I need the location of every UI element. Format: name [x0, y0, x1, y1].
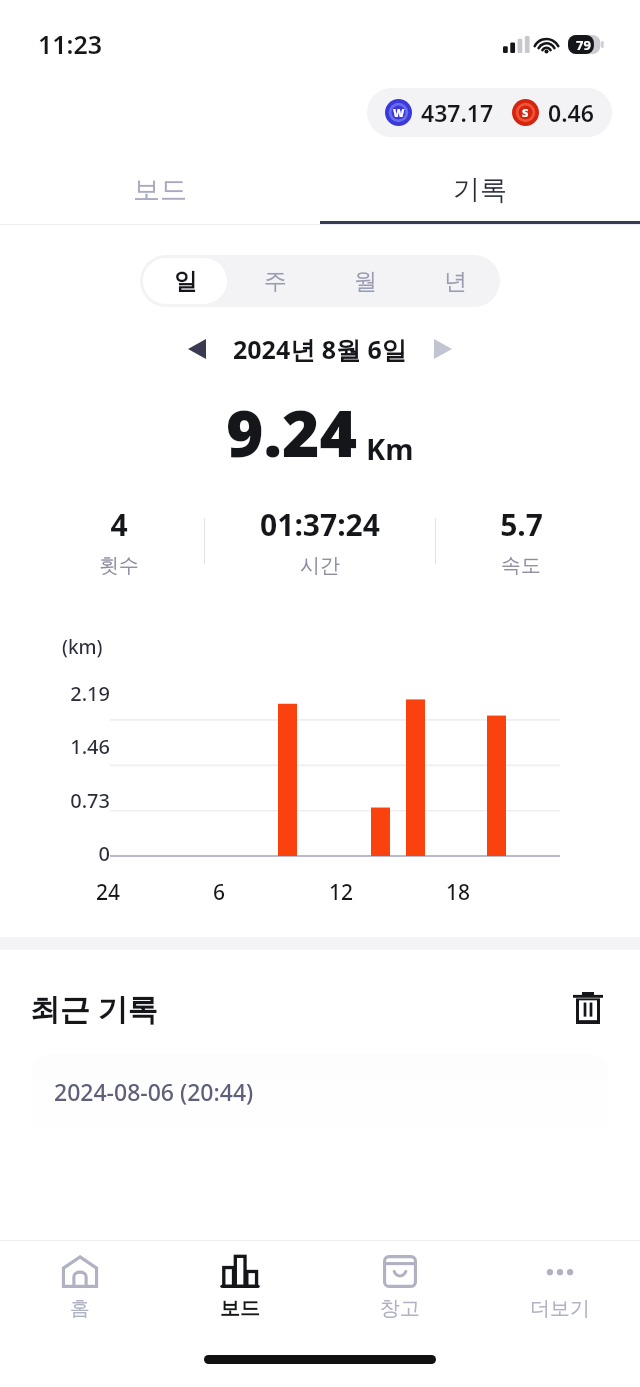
button[interactable]: 4	[34, 504, 204, 578]
staticText: 01:37:24	[260, 504, 380, 545]
staticText: 437.17	[421, 97, 494, 128]
staticText: 최근 기록	[30, 988, 158, 1029]
staticText: 79	[576, 36, 591, 54]
staticText: 보드	[133, 173, 187, 207]
staticText: W	[393, 105, 405, 120]
staticText: 주	[264, 267, 287, 296]
button[interactable]: 이전	[175, 327, 219, 371]
staticText: (km)	[62, 634, 103, 660]
button[interactable]: 5.7	[436, 504, 606, 578]
staticText: 5.7	[500, 504, 543, 545]
button[interactable]: 월	[323, 258, 407, 304]
staticText: 0.73	[48, 787, 110, 814]
button[interactable]: 홈	[0, 1241, 160, 1341]
staticText: Km	[366, 429, 414, 468]
button[interactable]: 2024-08-06 (20:44)	[32, 1054, 608, 1150]
staticText: 월	[354, 267, 377, 296]
button[interactable]: 창고	[320, 1241, 480, 1341]
staticText: 보드	[220, 1296, 260, 1321]
staticText: 기록	[453, 173, 507, 207]
button[interactable]: 01:37:24	[205, 504, 435, 578]
button[interactable]: W	[367, 88, 612, 137]
staticText: 2024년 8월 6일	[233, 332, 407, 366]
staticText: 4	[110, 504, 128, 545]
button[interactable]: 다음	[421, 327, 465, 371]
button[interactable]: 보드	[0, 159, 320, 221]
staticText: 0	[48, 840, 110, 867]
button[interactable]: 삭제	[564, 984, 612, 1032]
staticText: 일	[174, 267, 197, 296]
staticText: 년	[444, 267, 467, 296]
button[interactable]: 더보기	[480, 1241, 640, 1341]
staticText: 24	[96, 878, 121, 907]
button[interactable]: 기록	[320, 159, 640, 221]
staticText: 시간	[300, 553, 340, 578]
staticText: 0.46	[548, 97, 594, 128]
staticText: 12	[329, 878, 354, 907]
staticText: 2.19	[48, 680, 110, 707]
staticText: 6	[213, 878, 226, 907]
button[interactable]: 보드	[160, 1241, 320, 1341]
staticText: 1.46	[48, 733, 110, 760]
button[interactable]: 주	[233, 258, 317, 304]
staticText: 9.24	[226, 389, 358, 476]
button[interactable]: 년	[413, 258, 497, 304]
staticText: 속도	[501, 553, 541, 578]
staticText: 18	[446, 878, 471, 907]
staticText: 횟수	[99, 553, 139, 578]
button[interactable]: 일	[143, 258, 227, 304]
staticText: 11:23	[38, 27, 103, 61]
staticText: 2024-08-06 (20:44)	[54, 1076, 254, 1107]
staticText: 홈	[70, 1296, 90, 1321]
staticText: 더보기	[530, 1296, 590, 1321]
staticText: 창고	[380, 1296, 420, 1321]
staticText: S	[522, 105, 529, 120]
